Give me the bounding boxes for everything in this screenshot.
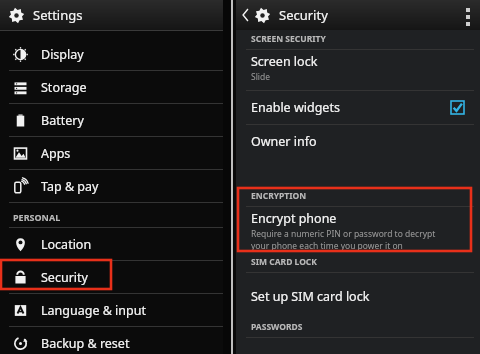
staticText: Location <box>41 236 92 253</box>
button[interactable]: Backup & reset <box>0 327 223 354</box>
staticText: Settings <box>33 6 83 24</box>
button[interactable]: More options <box>456 0 480 30</box>
staticText: Tap & pay <box>41 178 99 195</box>
staticText: PERSONAL <box>13 211 61 223</box>
staticText: Set up SIM card lock <box>251 288 370 305</box>
button[interactable]: Language & input <box>0 294 223 327</box>
staticText: SCREEN SECURITY <box>251 33 326 45</box>
button[interactable]: Location <box>0 228 223 261</box>
staticText: SIM CARD LOCK <box>251 256 317 268</box>
staticText: Screen lock <box>251 53 318 70</box>
staticText: Slide <box>251 71 271 83</box>
staticText: Owner info <box>251 133 317 150</box>
button[interactable]: Set up SIM card lock <box>236 281 480 311</box>
button[interactable]: Screen lock <box>236 51 480 85</box>
staticText: Apps <box>41 145 71 162</box>
staticText: Encrypt phone <box>251 210 337 227</box>
staticText: Display <box>41 46 84 63</box>
staticText: Security <box>279 6 328 24</box>
button[interactable]: Tap & pay <box>0 170 223 203</box>
staticText: Require a numeric PIN or password to dec… <box>251 228 436 240</box>
staticText: PASSWORDS <box>251 321 303 333</box>
staticText: Storage <box>41 79 87 96</box>
button[interactable]: Battery <box>0 104 223 137</box>
staticText: Language & input <box>41 302 146 319</box>
staticText: Backup & reset <box>41 335 130 352</box>
staticText: your phone each time you power it on <box>251 240 403 250</box>
staticText: Battery <box>41 112 84 129</box>
button[interactable]: Encrypt phone <box>236 208 480 250</box>
button[interactable]: Back <box>240 9 251 21</box>
button[interactable]: Settings <box>0 0 223 30</box>
staticText: Enable widgets <box>251 99 340 116</box>
button[interactable]: Security <box>0 261 223 294</box>
staticText: ENCRYPTION <box>251 190 307 202</box>
staticText: Security <box>41 269 88 286</box>
button[interactable]: Apps <box>0 137 223 170</box>
button[interactable]: Owner info <box>236 125 480 158</box>
button[interactable]: Enable widgets <box>236 91 480 124</box>
button[interactable]: Display <box>0 38 223 71</box>
button[interactable]: Storage <box>0 71 223 104</box>
